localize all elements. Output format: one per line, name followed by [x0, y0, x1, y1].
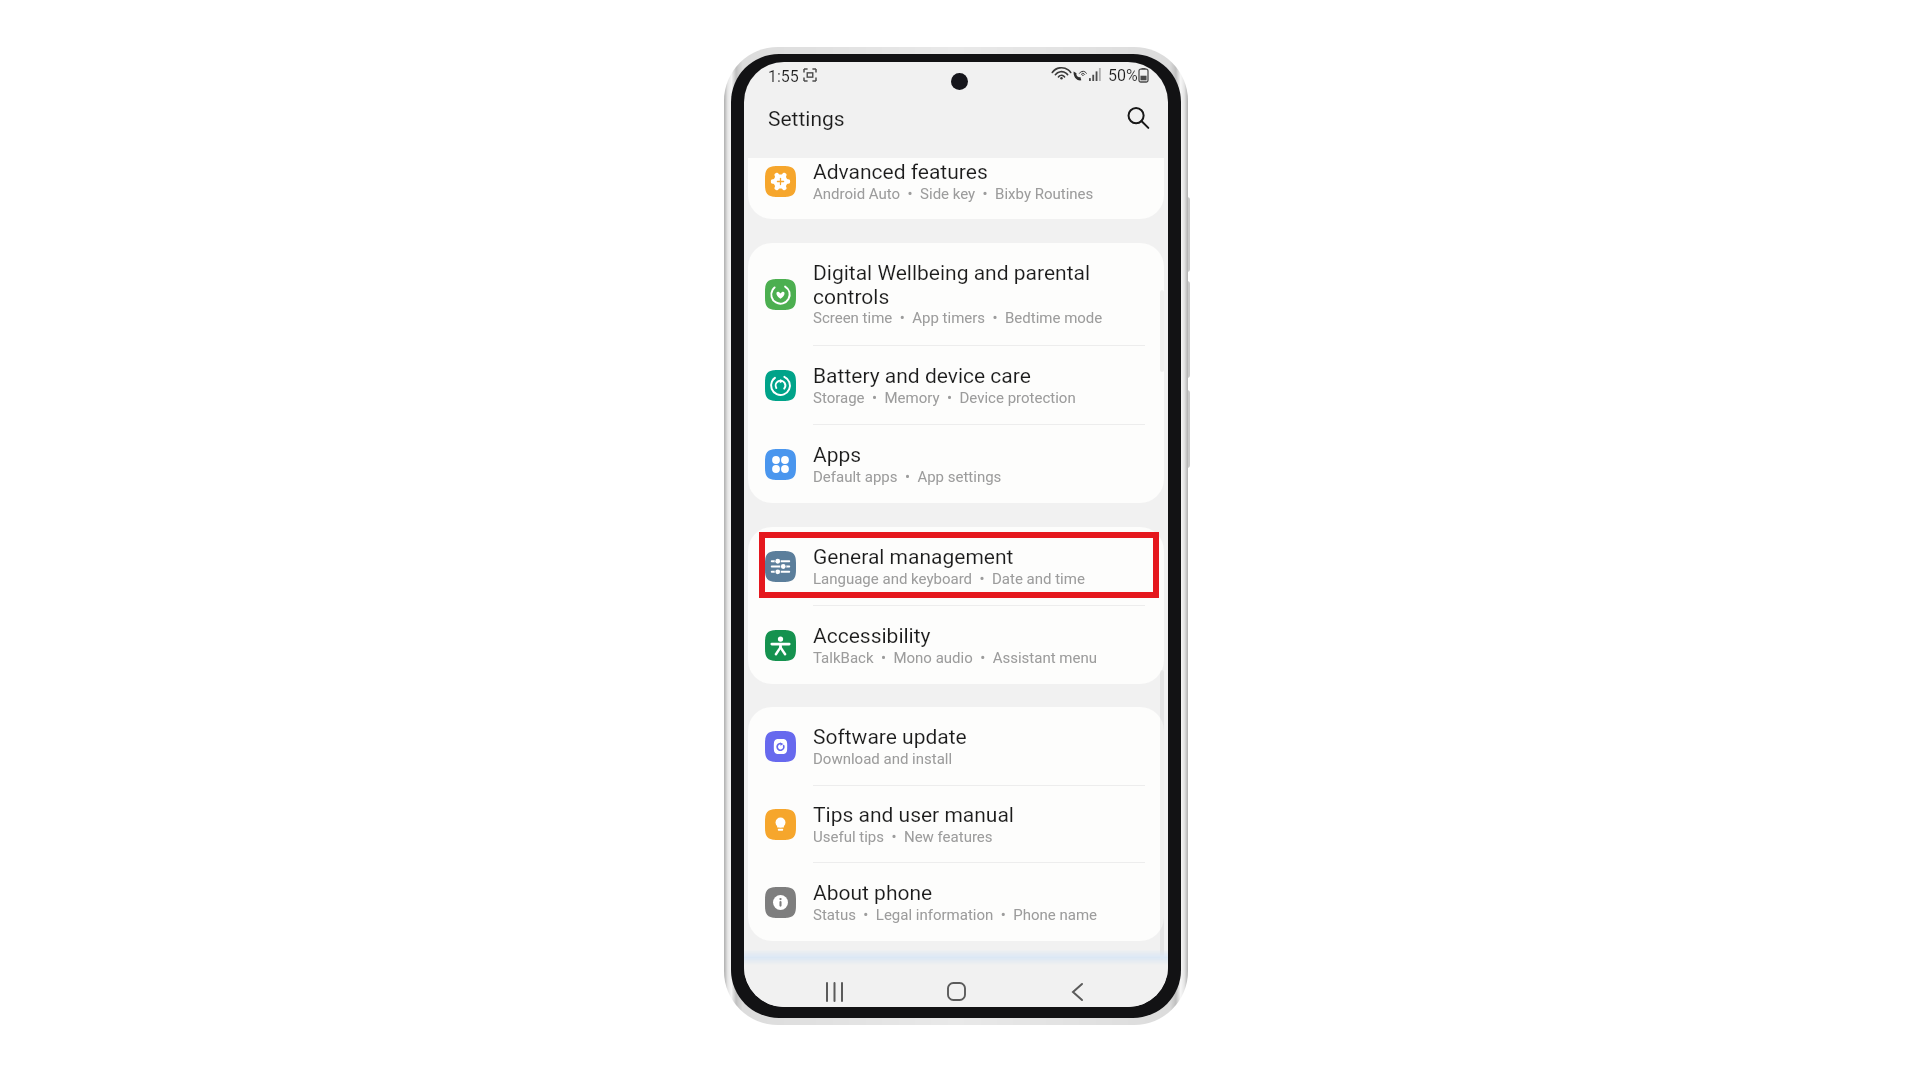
- staticText: 1:55: [768, 67, 799, 86]
- staticText: Default apps • App settings: [813, 468, 1002, 486]
- button[interactable]: Search: [1117, 97, 1159, 139]
- staticText: Software update: [813, 725, 967, 750]
- button[interactable]: About phone: [748, 863, 1164, 941]
- button[interactable]: Digital Wellbeing and parental controls: [748, 243, 1164, 345]
- staticText: Digital Wellbeing and parental controls: [813, 261, 1091, 309]
- staticText: Language and keyboard • Date and time: [813, 570, 1085, 588]
- button[interactable]: Back: [1056, 976, 1099, 1007]
- button[interactable]: Battery and device care: [748, 346, 1164, 424]
- staticText: Useful tips • New features: [813, 828, 993, 846]
- button[interactable]: Software update: [748, 707, 1164, 785]
- staticText: Battery and device care: [813, 364, 1031, 389]
- staticText: Settings: [768, 107, 845, 132]
- staticText: Storage • Memory • Device protection: [813, 389, 1076, 407]
- staticText: Android Auto • Side key • Bixby Routines: [813, 185, 1094, 203]
- staticText: Status • Legal information • Phone name: [813, 906, 1098, 924]
- staticText: Accessibility: [813, 624, 931, 649]
- staticText: 50%: [1108, 66, 1138, 85]
- staticText: Apps: [813, 443, 862, 468]
- button[interactable]: Tips and user manual: [748, 786, 1164, 862]
- staticText: About phone: [813, 881, 933, 906]
- staticText: Advanced features: [813, 160, 988, 185]
- staticText: Screen time • App timers • Bedtime mode: [813, 309, 1103, 327]
- staticText: TalkBack • Mono audio • Assistant menu: [813, 649, 1097, 667]
- button[interactable]: General management: [748, 527, 1164, 605]
- staticText: Tips and user manual: [813, 803, 1014, 828]
- button[interactable]: Accessibility: [748, 606, 1164, 684]
- staticText: General management: [813, 545, 1014, 570]
- staticText: Download and install: [813, 750, 953, 768]
- button[interactable]: Home: [935, 976, 978, 1007]
- button[interactable]: Apps: [748, 425, 1164, 503]
- button[interactable]: Recents: [813, 976, 856, 1007]
- button[interactable]: Advanced features: [748, 158, 1164, 219]
